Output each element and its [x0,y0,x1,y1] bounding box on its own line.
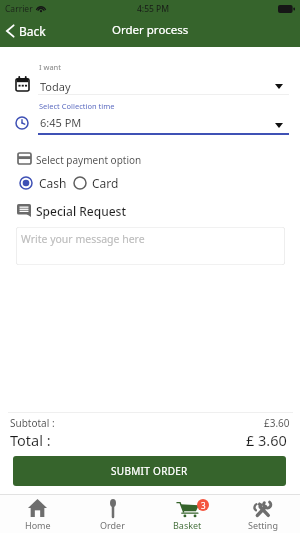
staticText: Special Request [36,203,127,219]
staticText: Carrier [5,3,33,15]
staticText: Setting [248,519,278,531]
button[interactable]: Card [71,173,121,193]
button[interactable]: Setting [225,495,300,531]
staticText: Card [92,175,119,191]
staticText: Order process [112,22,189,38]
button[interactable]: Cash [17,173,69,193]
staticText: Select payment option [36,153,142,167]
button[interactable]: Order [75,495,150,531]
other: Dropdown [275,123,283,128]
staticText: I want [39,62,61,72]
staticText: 4:55 PM [137,3,170,15]
staticText: 3 [201,500,206,511]
staticText: Basket [173,519,202,531]
staticText: Back [19,23,46,39]
staticText: Total : [10,430,51,450]
staticText: Subtotal : [10,416,55,430]
button[interactable]: Back [0,17,54,45]
staticText: Order [100,519,125,531]
staticText: 6:45 PM [40,115,82,130]
staticText: Cash [39,175,67,191]
staticText: SUBMIT ORDER [111,464,188,478]
button[interactable]: Select Collection time [8,98,292,135]
other: Dropdown [275,84,283,89]
staticText: £3.60 [264,416,290,430]
button[interactable]: Write your message here [16,227,285,265]
button[interactable]: Home [0,495,75,531]
staticText: Home [25,519,51,531]
staticText: £ 3.60 [246,430,287,450]
button[interactable]: I want [8,60,292,95]
staticText: Write your message here [21,232,145,246]
button[interactable]: 3 [150,495,225,531]
button[interactable]: SUBMIT ORDER [13,456,286,486]
staticText: Today [40,79,71,94]
staticText: Select Collection time [39,101,115,111]
